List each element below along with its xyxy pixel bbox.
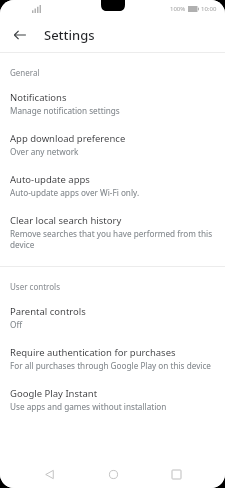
staticText: Google Play Instant <box>10 387 98 400</box>
staticText: For all purchases through Google Play on… <box>10 360 211 371</box>
staticText: Over any network <box>10 146 79 157</box>
button[interactable]: App download preference <box>0 123 225 164</box>
staticText: Use apps and games without installation <box>10 401 167 412</box>
staticText: General <box>10 67 40 78</box>
button[interactable]: Notifications <box>0 82 225 123</box>
button[interactable]: Require authentication for purchases <box>0 337 225 378</box>
staticText: Clear local search history <box>10 214 122 227</box>
button[interactable]: Clear local search history <box>0 205 225 257</box>
staticText: App download preference <box>10 132 126 145</box>
staticText: 100% <box>170 5 186 13</box>
staticText: Off <box>10 319 23 330</box>
button[interactable]: Google Play Instant <box>0 378 225 419</box>
staticText: Parental controls <box>10 305 86 318</box>
button[interactable]: Back <box>6 21 34 49</box>
staticText: 10:00 <box>201 5 217 13</box>
staticText: Notifications <box>10 91 67 104</box>
button[interactable]: Auto-update apps <box>0 164 225 205</box>
staticText: User controls <box>10 281 60 292</box>
staticText: Auto-update apps over Wi-Fi only. <box>10 187 140 198</box>
staticText: Auto-update apps <box>10 173 90 186</box>
staticText: Settings <box>44 26 95 44</box>
button[interactable]: Back <box>35 460 63 488</box>
staticText: Require authentication for purchases <box>10 346 176 359</box>
button[interactable]: Recent apps <box>162 460 190 488</box>
staticText: Manage notification settings <box>10 105 120 116</box>
button[interactable]: Home <box>99 460 127 488</box>
button[interactable]: Parental controls <box>0 296 225 337</box>
staticText: Remove searches that you have performed … <box>10 228 213 250</box>
